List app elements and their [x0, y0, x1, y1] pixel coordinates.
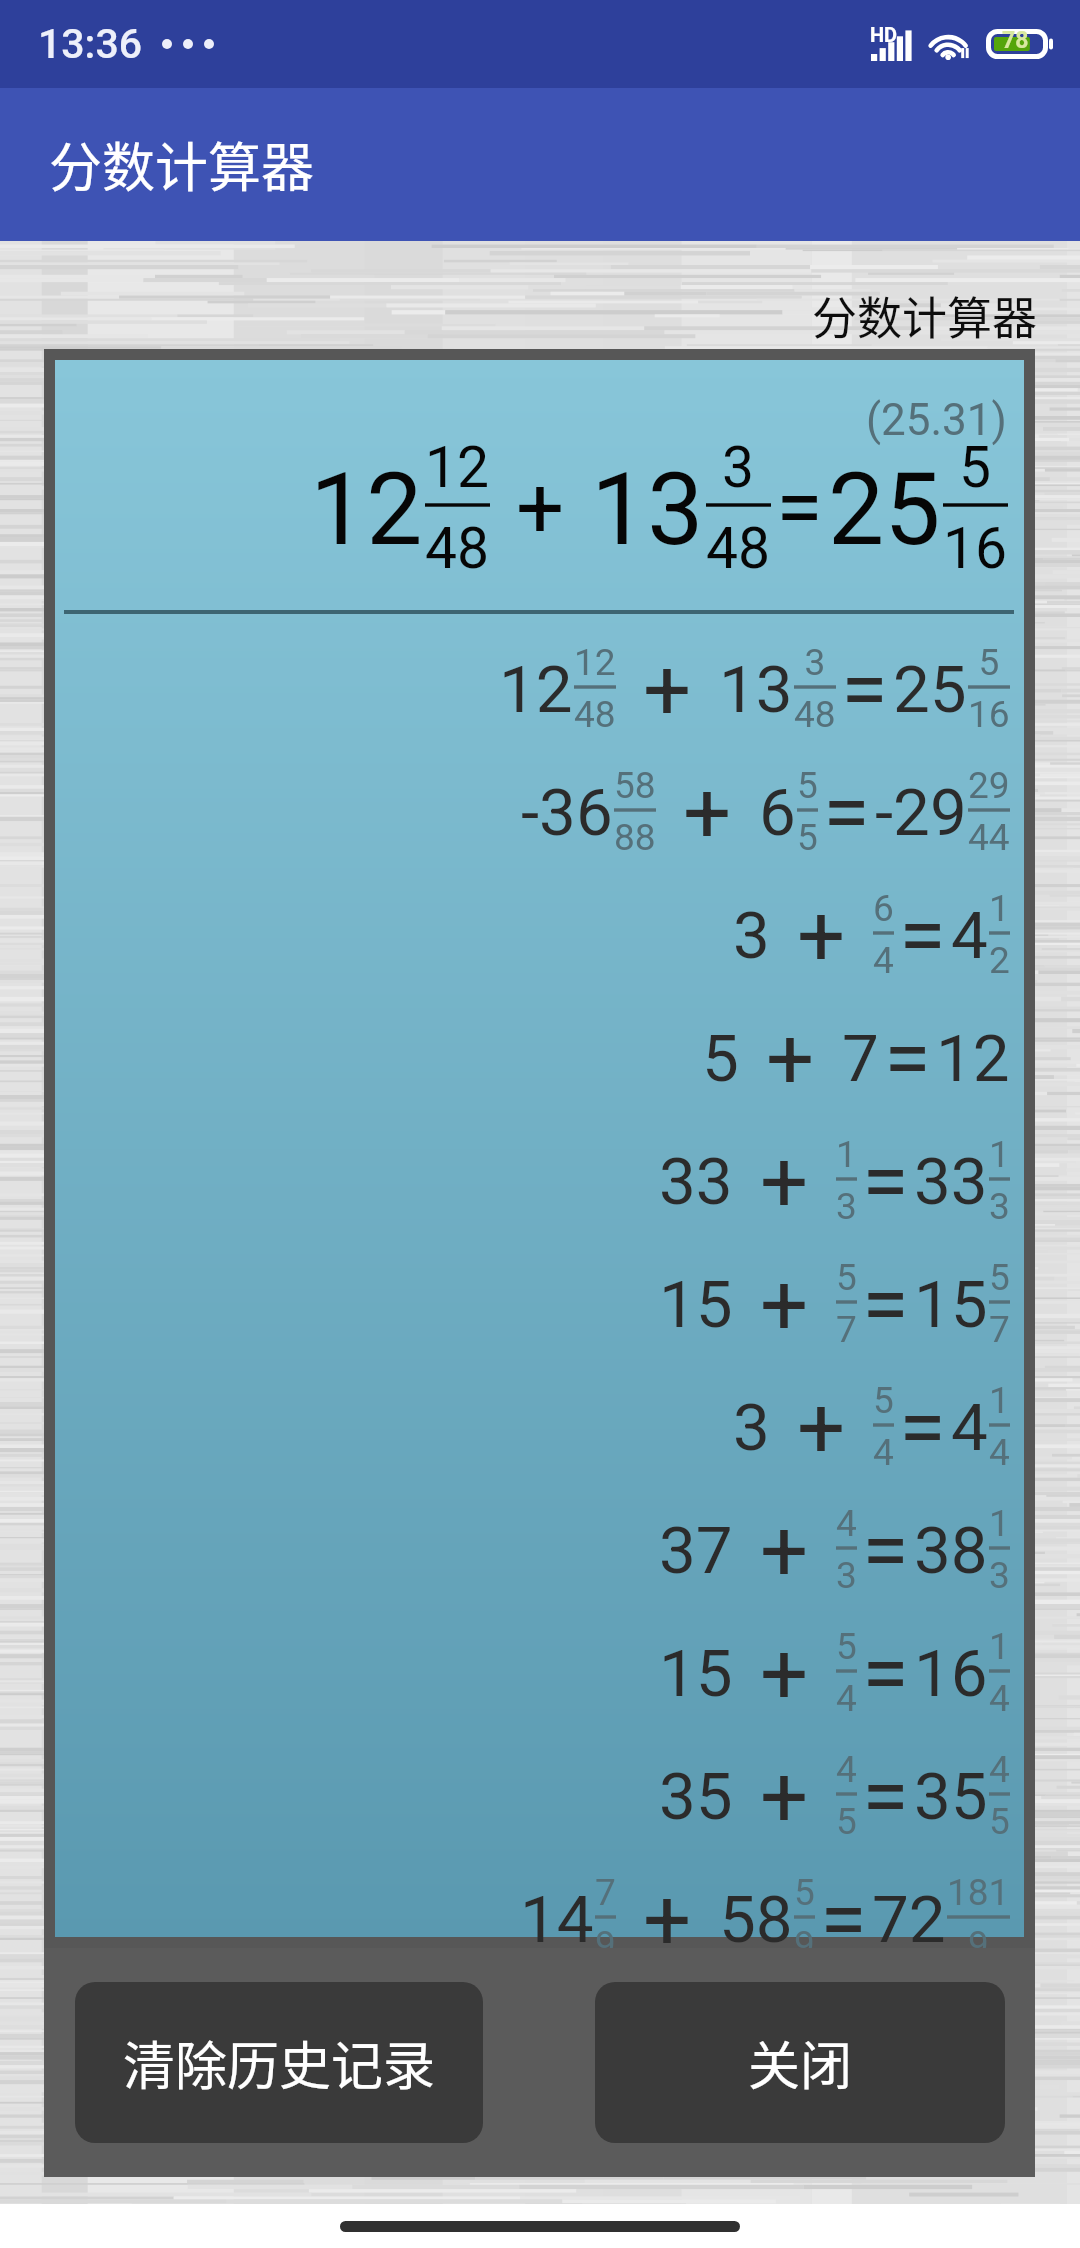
staticText: 13:36: [38, 20, 143, 68]
other: Wi-Fi: [927, 27, 972, 61]
other: Signal strength: [871, 27, 913, 61]
staticText: 清除历史记录: [123, 2025, 436, 2100]
staticText: 关闭: [748, 2025, 853, 2100]
button[interactable]: 关闭: [595, 1982, 1005, 2143]
button[interactable]: 清除历史记录: [75, 1982, 483, 2143]
staticText: 分数计算器: [812, 283, 1038, 348]
other: Battery 78 percent: [986, 29, 1054, 59]
staticText: 分数计算器: [49, 126, 314, 203]
